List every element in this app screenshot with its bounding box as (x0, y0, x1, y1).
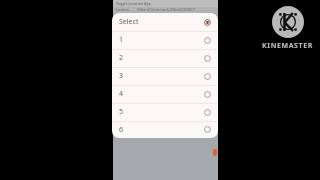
staticText: KINEMASTER (262, 41, 313, 50)
staticText: Office of Citizen tax & Official DISTRIC… (137, 8, 196, 12)
button[interactable]: 6 (112, 121, 218, 138)
button[interactable]: Select (112, 13, 218, 31)
staticText: Location (116, 8, 129, 12)
staticText: 2 (119, 53, 124, 63)
button[interactable]: 5 (112, 103, 218, 121)
staticText: Toggle Location App (116, 1, 151, 6)
staticText: 5 (119, 107, 124, 117)
button[interactable]: 1 (112, 31, 218, 49)
staticText: 6 (119, 125, 124, 135)
button[interactable]: 2 (112, 49, 218, 67)
button[interactable]: Toggle Location App (113, 0, 218, 7)
staticText: 1 (119, 35, 124, 45)
staticText: Select (119, 17, 139, 27)
button[interactable]: 4 (112, 85, 218, 103)
staticText: 4 (119, 89, 124, 99)
staticText: 3 (119, 71, 124, 81)
button[interactable]: 3 (112, 67, 218, 85)
